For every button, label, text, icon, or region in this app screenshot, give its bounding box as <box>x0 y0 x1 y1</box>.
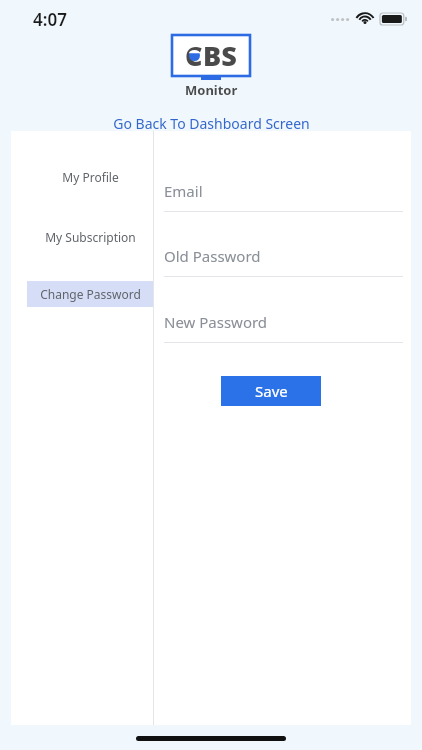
staticText: My Subscription <box>45 229 136 245</box>
button[interactable]: Email <box>153 179 403 212</box>
staticText: BS <box>203 37 237 74</box>
staticText: 4:07 <box>33 8 67 31</box>
button[interactable]: My Subscription <box>27 224 153 250</box>
button[interactable]: Change Password <box>27 281 153 307</box>
staticText: Save <box>255 381 288 401</box>
staticText: My Profile <box>62 169 119 185</box>
staticText: Monitor <box>185 81 238 99</box>
staticText: Change Password <box>40 286 141 302</box>
staticText: Old Password <box>164 246 261 266</box>
button[interactable]: Save <box>221 376 321 406</box>
staticText: Email <box>164 181 203 201</box>
button[interactable]: New Password <box>153 310 403 343</box>
button[interactable]: My Profile <box>27 164 153 190</box>
staticText: Go Back To Dashboard Screen <box>113 114 310 133</box>
staticText: New Password <box>164 312 268 332</box>
button[interactable]: Go Back To Dashboard Screen <box>105 112 318 135</box>
staticText: C <box>185 37 203 74</box>
button[interactable]: Old Password <box>153 244 403 277</box>
